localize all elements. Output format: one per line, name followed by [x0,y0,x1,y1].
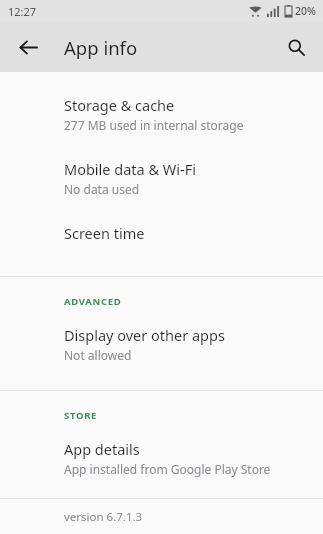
button[interactable]: Screen time [0,210,323,256]
staticText: Display over other apps [64,325,225,345]
staticText: No data used [64,181,140,197]
staticText: STORE [64,409,98,422]
staticText: Not allowed [64,347,132,363]
staticText: 12:27 [8,4,37,19]
staticText: ADVANCED [64,295,122,308]
button[interactable]: Display over other apps [0,312,323,376]
staticText: Storage & cache [64,95,175,115]
staticText: 277 MB used in internal storage [64,117,244,133]
button[interactable]: Search [276,27,316,67]
staticText: Mobile data & Wi-Fi [64,159,197,179]
button[interactable]: App details [0,426,323,490]
staticText: Screen time [64,223,145,243]
button[interactable]: Storage & cache [0,82,323,146]
staticText: App info [64,35,138,60]
button[interactable]: Back [8,27,48,67]
button[interactable]: Mobile data & Wi-Fi [0,146,323,210]
staticText: App installed from Google Play Store [64,461,271,477]
staticText: version 6.7.1.3 [64,509,143,525]
staticText: App details [64,439,140,459]
staticText: 20% [295,4,316,18]
